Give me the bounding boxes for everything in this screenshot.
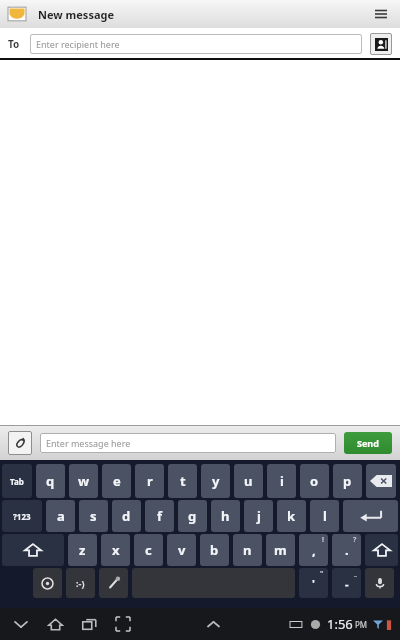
staticText: d xyxy=(122,507,131,525)
staticText: u xyxy=(244,472,253,490)
button[interactable]: h xyxy=(211,500,240,532)
button[interactable]: w xyxy=(69,464,98,498)
staticText: o xyxy=(310,472,319,490)
button[interactable]: o xyxy=(300,464,329,498)
button[interactable]: d xyxy=(112,500,141,532)
staticText: ?123 xyxy=(13,511,31,522)
button[interactable]: Voice input xyxy=(365,568,394,598)
button[interactable]: u xyxy=(234,464,263,498)
button[interactable]: Status xyxy=(290,615,392,633)
staticText: Enter recipient here xyxy=(36,38,120,50)
button[interactable]: Enter recipient here xyxy=(30,34,362,54)
button[interactable]: - xyxy=(332,568,361,598)
button[interactable]: t xyxy=(168,464,197,498)
button[interactable]: m xyxy=(266,534,295,566)
staticText: p xyxy=(343,472,352,490)
staticText: ! xyxy=(322,535,324,545)
staticText: w xyxy=(78,472,90,490)
staticText: New message xyxy=(38,7,115,22)
staticText: PM xyxy=(355,619,368,630)
staticText: m xyxy=(274,541,287,559)
button[interactable]: key xyxy=(366,464,396,498)
button[interactable]: Expand xyxy=(201,612,225,636)
staticText: - xyxy=(345,576,349,591)
button[interactable]: y xyxy=(201,464,230,498)
button[interactable]: f xyxy=(145,500,174,532)
staticText: r xyxy=(147,472,153,490)
button[interactable]: r xyxy=(135,464,164,498)
button[interactable]: n xyxy=(233,534,262,566)
staticText: _ xyxy=(354,569,357,579)
button[interactable]: ?123 xyxy=(2,500,42,532)
staticText: n xyxy=(243,541,252,559)
button[interactable]: s xyxy=(79,500,108,532)
button[interactable]: g xyxy=(178,500,207,532)
staticText: ? xyxy=(353,535,357,545)
button[interactable]: ' xyxy=(299,568,328,598)
staticText: " xyxy=(320,569,324,579)
button[interactable]: c xyxy=(134,534,163,566)
staticText: k xyxy=(287,507,296,525)
staticText: z xyxy=(79,541,86,559)
staticText: i xyxy=(280,472,284,490)
button[interactable]: e xyxy=(102,464,131,498)
staticText: x xyxy=(112,541,120,559)
staticText: :-) xyxy=(76,577,85,589)
staticText: ' xyxy=(312,576,315,591)
button[interactable]: Screenshot xyxy=(110,611,136,637)
button[interactable]: Attach xyxy=(8,431,32,455)
button[interactable]: App icon xyxy=(6,3,28,25)
staticText: v xyxy=(178,541,186,559)
button[interactable]: v xyxy=(167,534,196,566)
staticText: j xyxy=(257,507,261,525)
staticText: f xyxy=(157,507,163,525)
button[interactable]: l xyxy=(310,500,339,532)
button[interactable]: key xyxy=(2,534,64,566)
button[interactable]: q xyxy=(36,464,65,498)
staticText: g xyxy=(188,507,197,525)
button[interactable]: a xyxy=(46,500,75,532)
button[interactable]: j xyxy=(244,500,273,532)
button[interactable]: b xyxy=(200,534,229,566)
staticText: Send xyxy=(357,437,379,449)
button[interactable]: , xyxy=(299,534,328,566)
staticText: y xyxy=(212,472,220,490)
button[interactable]: key xyxy=(343,500,398,532)
staticText: Tab xyxy=(10,476,24,487)
staticText: . xyxy=(345,541,349,559)
button[interactable]: Enter message here xyxy=(40,433,336,453)
staticText: s xyxy=(90,507,97,525)
button[interactable]: k xyxy=(277,500,306,532)
button[interactable]: z xyxy=(68,534,97,566)
button[interactable]: Settings xyxy=(99,568,128,598)
button[interactable]: Recent apps xyxy=(76,611,102,637)
staticText: l xyxy=(323,507,327,525)
staticText: 1:56 xyxy=(327,615,353,633)
button[interactable]: Hide keyboard xyxy=(8,611,34,637)
staticText: a xyxy=(57,507,65,525)
staticText: e xyxy=(113,472,121,490)
staticText: , xyxy=(312,541,316,559)
staticText: To xyxy=(8,37,20,51)
button[interactable]: x xyxy=(101,534,130,566)
button[interactable]: . xyxy=(332,534,361,566)
staticText: c xyxy=(145,541,152,559)
button[interactable]: key xyxy=(365,534,398,566)
staticText: Enter message here xyxy=(46,437,131,449)
button[interactable]: Choose contact xyxy=(370,33,392,55)
staticText: b xyxy=(210,541,219,559)
button[interactable]: i xyxy=(267,464,296,498)
staticText: h xyxy=(221,507,230,525)
staticText: t xyxy=(180,472,186,490)
staticText: q xyxy=(46,472,55,490)
button[interactable]: Home xyxy=(42,611,68,637)
button[interactable]: Input method xyxy=(33,568,62,598)
button[interactable]: Emoji xyxy=(66,568,95,598)
button[interactable]: Tab xyxy=(2,464,32,498)
button[interactable]: Send xyxy=(344,432,392,454)
button[interactable]: p xyxy=(333,464,362,498)
button[interactable]: More options xyxy=(370,3,392,25)
